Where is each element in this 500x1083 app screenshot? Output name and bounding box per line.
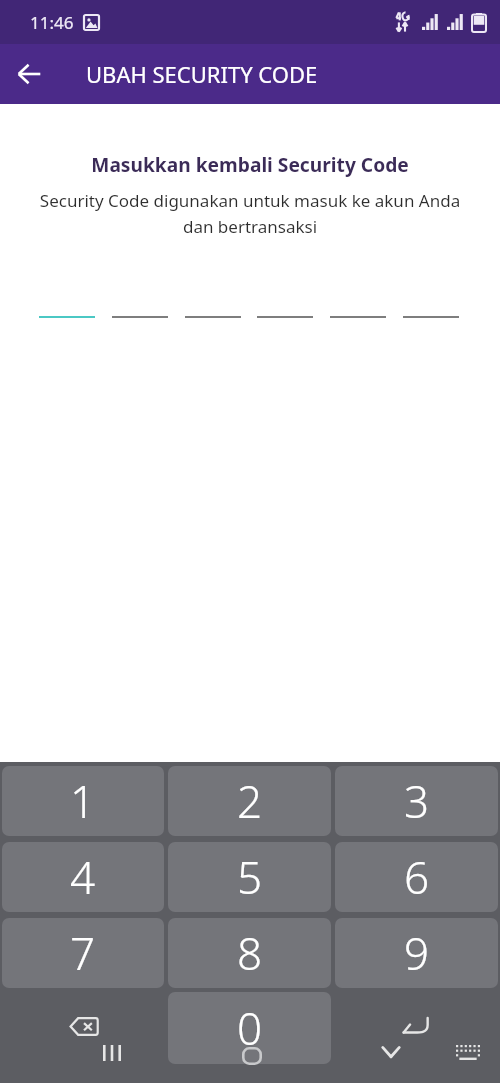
button[interactable]: 0 [168,992,331,1064]
staticText: UBAH SECURITY CODE [86,59,318,89]
button[interactable]: Digit 1 [39,296,95,318]
staticText: 4 [70,847,96,907]
button[interactable]: 5 [168,842,331,912]
staticText: 9 [404,923,430,983]
staticText: 0 [237,998,263,1058]
button[interactable]: Digit 6 [403,296,459,318]
button[interactable]: Digit 4 [257,296,313,318]
staticText: 11:46 [30,11,74,34]
button[interactable]: Enter [333,992,500,1064]
button[interactable]: 6 [335,842,498,912]
staticText: 1 [70,771,96,831]
staticText: 5 [237,847,263,907]
button[interactable]: 2 [168,766,331,836]
staticText: 8 [237,923,263,983]
staticText: 6 [404,847,430,907]
staticText: 7 [70,923,96,983]
button[interactable]: 8 [168,918,331,988]
staticText: Masukkan kembali Security Code [0,151,500,177]
button[interactable]: 3 [335,766,498,836]
button[interactable]: Backspace [0,992,166,1064]
button[interactable]: Digit 3 [185,296,241,318]
button[interactable]: 9 [335,918,498,988]
button[interactable]: 4 [2,842,164,912]
staticText: 2 [237,771,263,831]
button[interactable]: Back [0,44,58,104]
button[interactable]: 1 [2,766,164,836]
button[interactable]: Digit 2 [112,296,168,318]
staticText: 3 [404,771,430,831]
staticText: Security Code digunakan untuk masuk ke a… [30,189,470,238]
button[interactable]: 7 [2,918,164,988]
button[interactable]: Digit 5 [330,296,386,318]
